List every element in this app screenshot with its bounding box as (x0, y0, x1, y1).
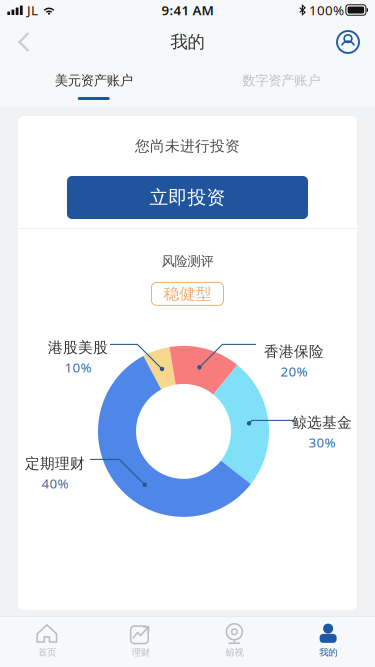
staticText: 港股美股 (48, 338, 108, 356)
button[interactable]: 立即投资 (67, 176, 308, 219)
staticText: 香港保险 (264, 342, 324, 360)
staticText: 鲸选基金 (292, 413, 352, 431)
staticText: 定期理财 (25, 454, 85, 472)
button[interactable]: Back (0, 20, 44, 64)
staticText: 30% (308, 433, 335, 451)
button[interactable]: 我的 (281, 617, 375, 667)
staticText: 10% (64, 358, 91, 376)
staticText: 美元资产账户 (55, 72, 133, 89)
button[interactable]: 理财 (94, 617, 188, 667)
staticText: 理财 (132, 647, 150, 658)
button[interactable]: Profile (321, 20, 375, 64)
staticText: 我的 (170, 31, 204, 53)
staticText: 您尚未进行投资 (135, 137, 240, 155)
staticText: JL (27, 1, 38, 19)
staticText: 我的 (319, 647, 337, 658)
button[interactable]: 数字资产账户 (187, 64, 375, 106)
staticText: 鲸视 (225, 647, 243, 658)
button[interactable]: 美元资产账户 (0, 64, 187, 106)
staticText: 20% (280, 362, 307, 380)
staticText: 立即投资 (149, 186, 225, 209)
staticText: 100% (309, 1, 344, 19)
button[interactable]: 首页 (0, 617, 94, 667)
staticText: 9:41 AM (161, 1, 213, 19)
staticText: 首页 (38, 647, 56, 658)
button[interactable]: 鲸视 (187, 617, 281, 667)
staticText: 数字资产账户 (242, 72, 320, 89)
staticText: 40% (41, 474, 68, 492)
staticText: 稳健型 (163, 284, 211, 304)
staticText: 风险测评 (161, 253, 213, 269)
